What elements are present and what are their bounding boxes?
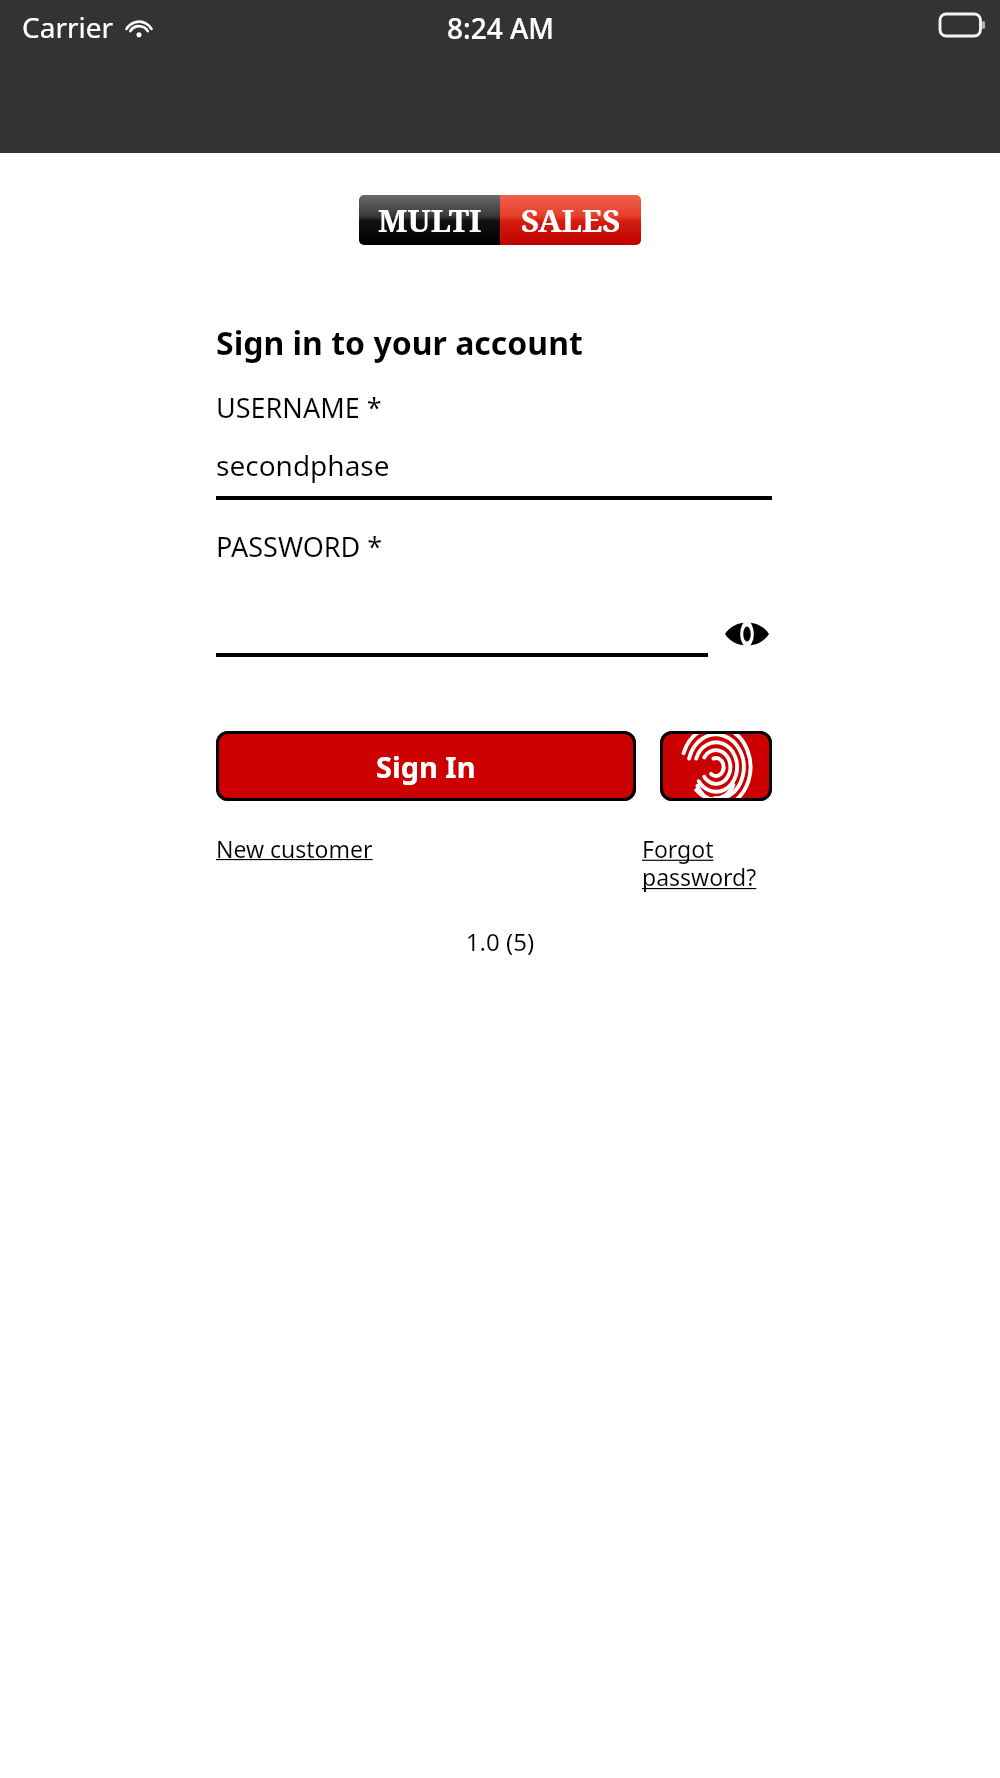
staticText: 8:24 AM — [447, 9, 554, 47]
staticText: SALES — [521, 199, 621, 241]
button[interactable]: New customer — [216, 833, 379, 864]
staticText: 1.0 (5) — [0, 925, 1000, 958]
staticText: secondphase — [216, 446, 390, 484]
staticText: Sign in to your account — [216, 321, 583, 365]
staticText: New customer — [216, 833, 379, 864]
staticText: Sign In — [376, 747, 476, 786]
staticText: PASSWORD * — [216, 528, 383, 565]
button[interactable]: secondphase — [216, 446, 772, 500]
button[interactable]: Sign In — [216, 731, 636, 801]
button[interactable]: Sign in with fingerprint — [660, 731, 772, 801]
staticText: Forgot password? — [642, 833, 772, 893]
staticText: Carrier — [22, 8, 114, 46]
staticText: MULTI — [378, 199, 482, 241]
button[interactable] — [216, 627, 708, 657]
staticText: USERNAME * — [216, 389, 382, 426]
button[interactable]: Forgot password? — [642, 833, 772, 893]
button[interactable]: Show password — [722, 611, 772, 657]
